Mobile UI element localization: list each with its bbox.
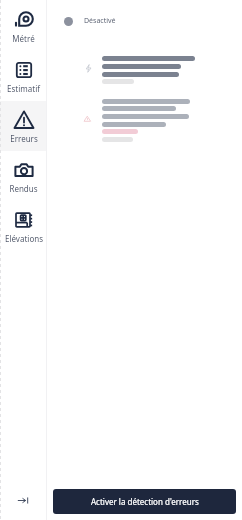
staticText: Métré bbox=[12, 33, 35, 44]
staticText: Rendus bbox=[9, 183, 38, 194]
button[interactable]: Erreurs bbox=[0, 101, 47, 151]
staticText: Erreurs bbox=[10, 133, 38, 144]
button[interactable]: Rendus bbox=[0, 151, 47, 201]
staticText: Désactivé bbox=[84, 16, 116, 26]
staticText: Activer la détection d'erreurs bbox=[91, 496, 199, 507]
button[interactable]: Elévations bbox=[0, 201, 47, 251]
staticText: Elévations bbox=[5, 233, 43, 244]
staticText: Estimatif bbox=[7, 83, 40, 94]
button[interactable]: Activer la détection d'erreurs bbox=[53, 489, 236, 514]
button[interactable]: Estimatif bbox=[0, 51, 47, 101]
button[interactable]: Déconnexion bbox=[0, 480, 47, 520]
button[interactable]: Métré bbox=[0, 1, 47, 51]
